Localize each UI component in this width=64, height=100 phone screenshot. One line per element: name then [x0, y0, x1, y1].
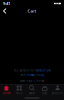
staticText: 9:41	[3, 1, 10, 6]
staticText: and	[21, 73, 26, 77]
staticText: Need help? Contact	[19, 79, 44, 83]
staticText: Account	[52, 91, 63, 95]
staticText: Privacy Policy	[26, 73, 43, 77]
staticText: You agree to the	[14, 69, 35, 72]
staticText: Terms of Use	[35, 69, 50, 72]
staticText: Home	[3, 91, 10, 95]
staticText: Cart	[27, 8, 36, 14]
button[interactable]: Terms of Use	[35, 69, 50, 72]
button[interactable]: Home	[0, 84, 13, 96]
staticText: Shop	[16, 91, 23, 95]
button[interactable]: Shop	[13, 84, 26, 96]
button[interactable]: Search	[26, 84, 38, 96]
staticText: Search	[28, 91, 35, 95]
button[interactable]: Privacy Policy	[26, 73, 43, 77]
button[interactable]: Back	[1, 7, 8, 15]
button[interactable]: Account	[51, 84, 64, 96]
button[interactable]: Bag	[38, 84, 51, 96]
staticText: Bag	[42, 91, 47, 95]
